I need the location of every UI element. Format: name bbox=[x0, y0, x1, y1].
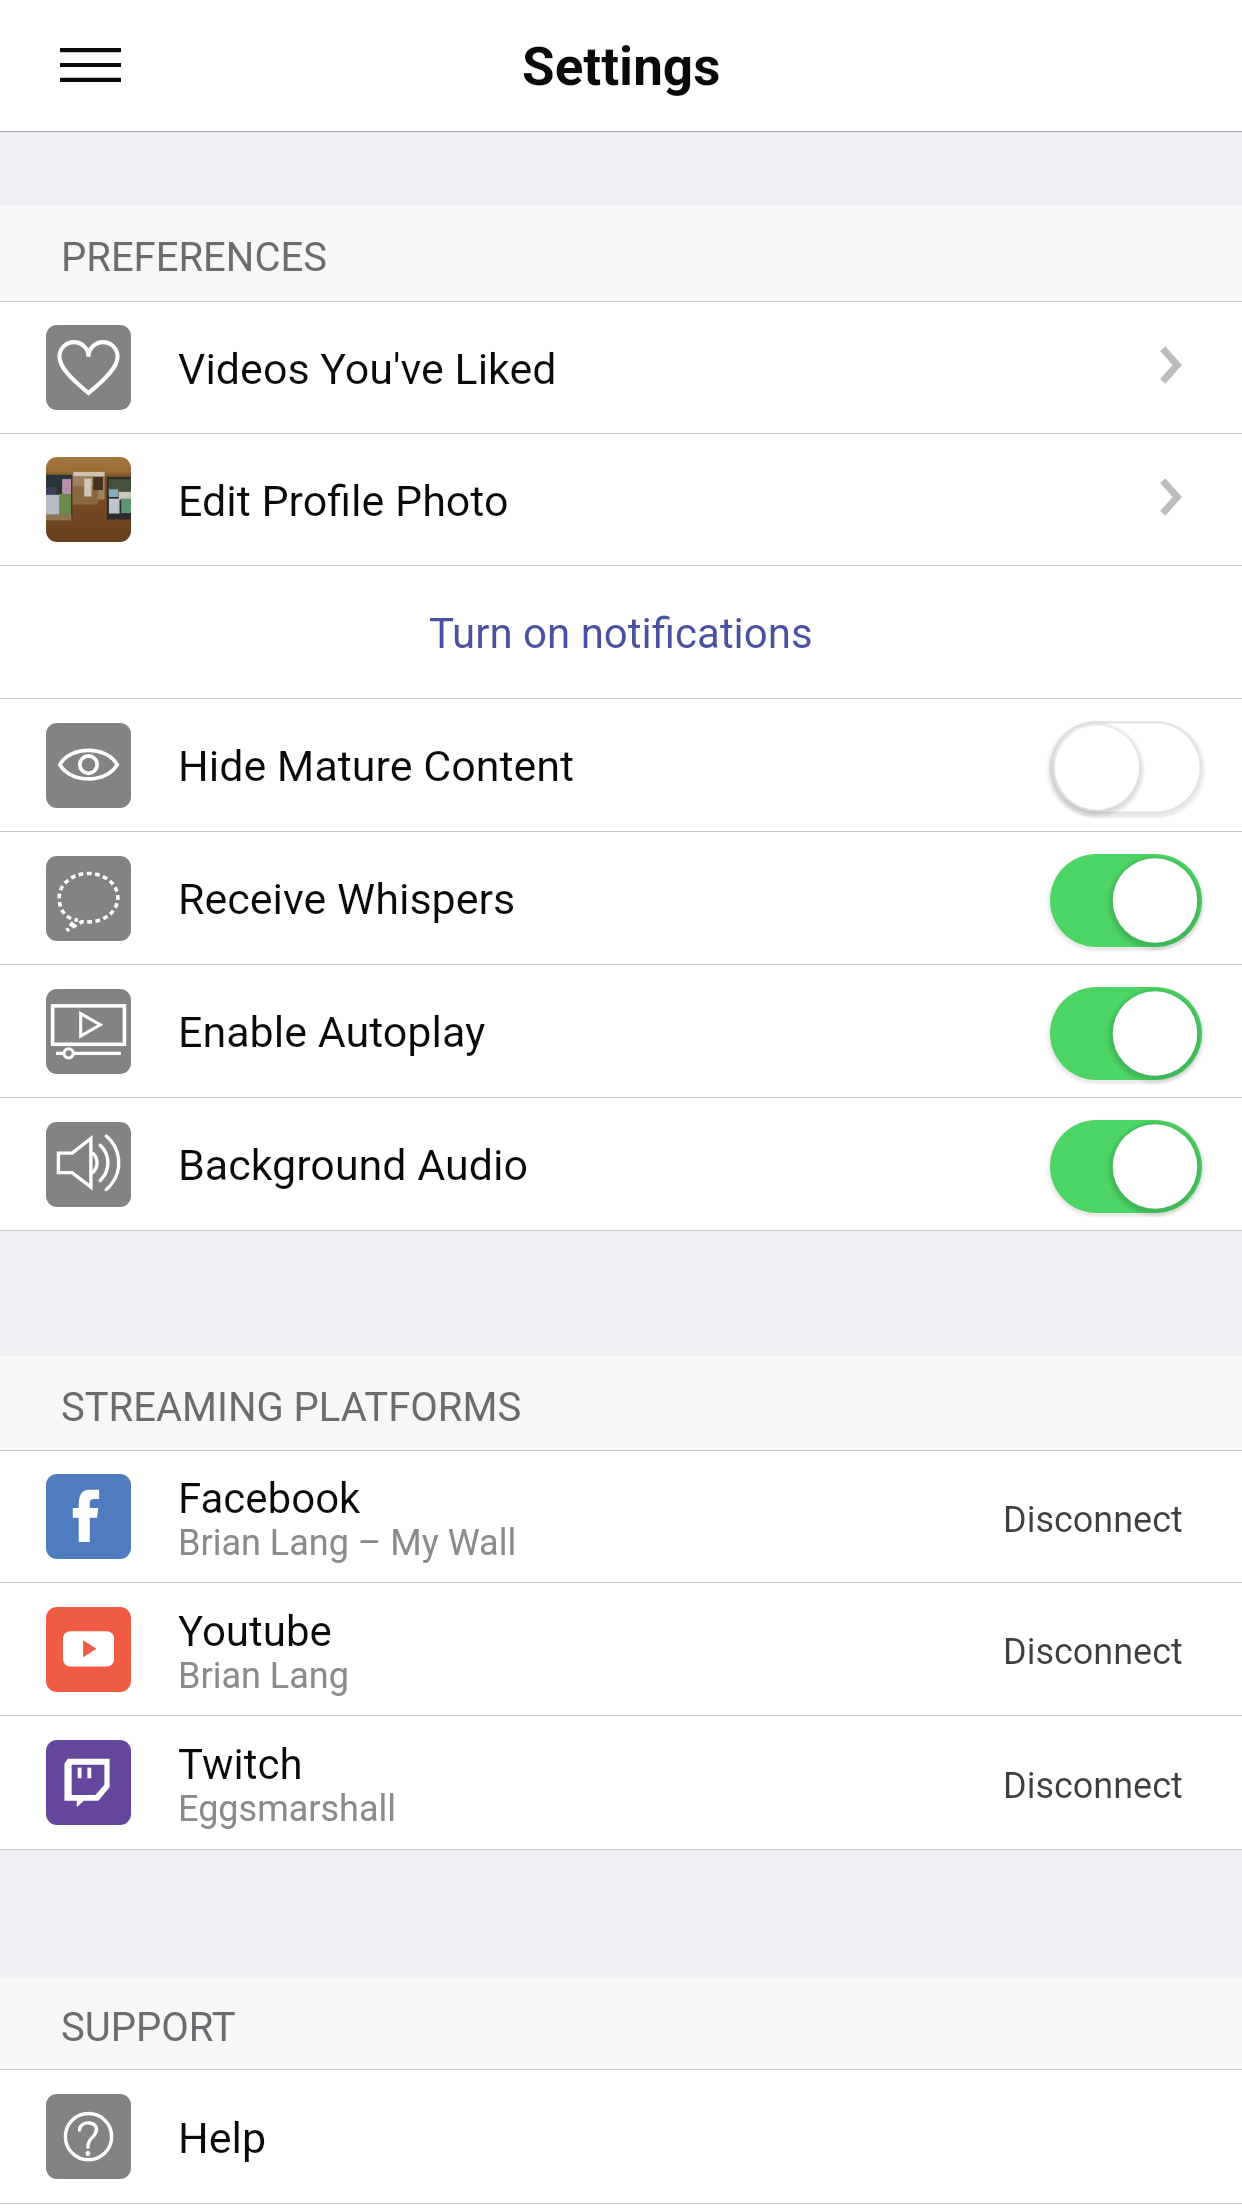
staticText: Videos You've Liked bbox=[178, 344, 1159, 394]
staticText: Twitch bbox=[178, 1740, 303, 1789]
button[interactable]: Hide Mature Content off bbox=[1050, 721, 1202, 814]
staticText: Edit Profile Photo bbox=[178, 476, 1159, 526]
staticText: Brian Lang bbox=[178, 1655, 349, 1697]
button[interactable]: Hide Mature Content bbox=[0, 699, 1242, 831]
staticText: Eggsmarshall bbox=[178, 1788, 396, 1830]
button[interactable]: Background Audio on bbox=[1050, 1120, 1202, 1213]
button[interactable]: Background Audio bbox=[0, 1098, 1242, 1230]
staticText: Settings bbox=[522, 36, 721, 98]
staticText: Disconnect bbox=[1003, 1765, 1183, 1807]
button[interactable]: Facebook bbox=[0, 1451, 1242, 1582]
staticText: Youtube bbox=[178, 1607, 332, 1656]
button[interactable]: Videos You've Liked bbox=[0, 302, 1242, 433]
staticText: Enable Autoplay bbox=[178, 1007, 1050, 1057]
staticText: Turn on notifications bbox=[429, 609, 813, 658]
button[interactable]: Enable Autoplay on bbox=[1050, 987, 1202, 1080]
staticText: Facebook bbox=[178, 1474, 361, 1523]
button[interactable]: Enable Autoplay bbox=[0, 965, 1242, 1097]
staticText: Receive Whispers bbox=[178, 874, 1050, 924]
staticText: SUPPORT bbox=[61, 2004, 236, 2051]
button[interactable]: Twitch bbox=[0, 1716, 1242, 1849]
staticText: Disconnect bbox=[1003, 1499, 1183, 1541]
staticText: PREFERENCES bbox=[61, 234, 327, 281]
button[interactable]: Receive Whispers on bbox=[1050, 854, 1202, 947]
staticText: Hide Mature Content bbox=[178, 741, 1050, 791]
button[interactable]: Turn on notifications bbox=[0, 566, 1242, 698]
staticText: Help bbox=[178, 2113, 1242, 2163]
button[interactable]: Help bbox=[0, 2070, 1242, 2203]
button[interactable]: Youtube bbox=[0, 1583, 1242, 1715]
button[interactable]: Edit Profile Photo bbox=[0, 434, 1242, 565]
button[interactable]: Receive Whispers bbox=[0, 832, 1242, 964]
staticText: Disconnect bbox=[1003, 1631, 1183, 1673]
staticText: Background Audio bbox=[178, 1140, 1050, 1190]
staticText: Brian Lang – My Wall bbox=[178, 1522, 517, 1564]
button[interactable]: Open navigation menu bbox=[21, 2, 157, 130]
staticText: STREAMING PLATFORMS bbox=[61, 1384, 522, 1431]
